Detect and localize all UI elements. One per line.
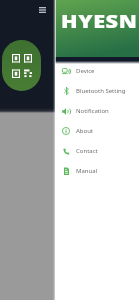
staticText: Contact (76, 147, 98, 155)
button[interactable]: Notification (55, 101, 139, 121)
button[interactable]: Device (55, 61, 139, 81)
button[interactable]: Open navigation menu (33, 0, 52, 19)
button[interactable]: Scan QR code (2, 40, 41, 91)
staticText: About (76, 127, 94, 135)
staticText: Device (76, 67, 95, 75)
staticText: HYESN (61, 10, 138, 33)
button[interactable]: Bluetooth Setting (55, 81, 139, 101)
button[interactable]: Contact (55, 141, 139, 161)
staticText: Bluetooth Setting (76, 87, 126, 95)
button[interactable]: Manual (55, 161, 139, 181)
staticText: Manual (76, 167, 98, 175)
staticText: Notification (76, 107, 109, 115)
button[interactable]: About (55, 121, 139, 141)
